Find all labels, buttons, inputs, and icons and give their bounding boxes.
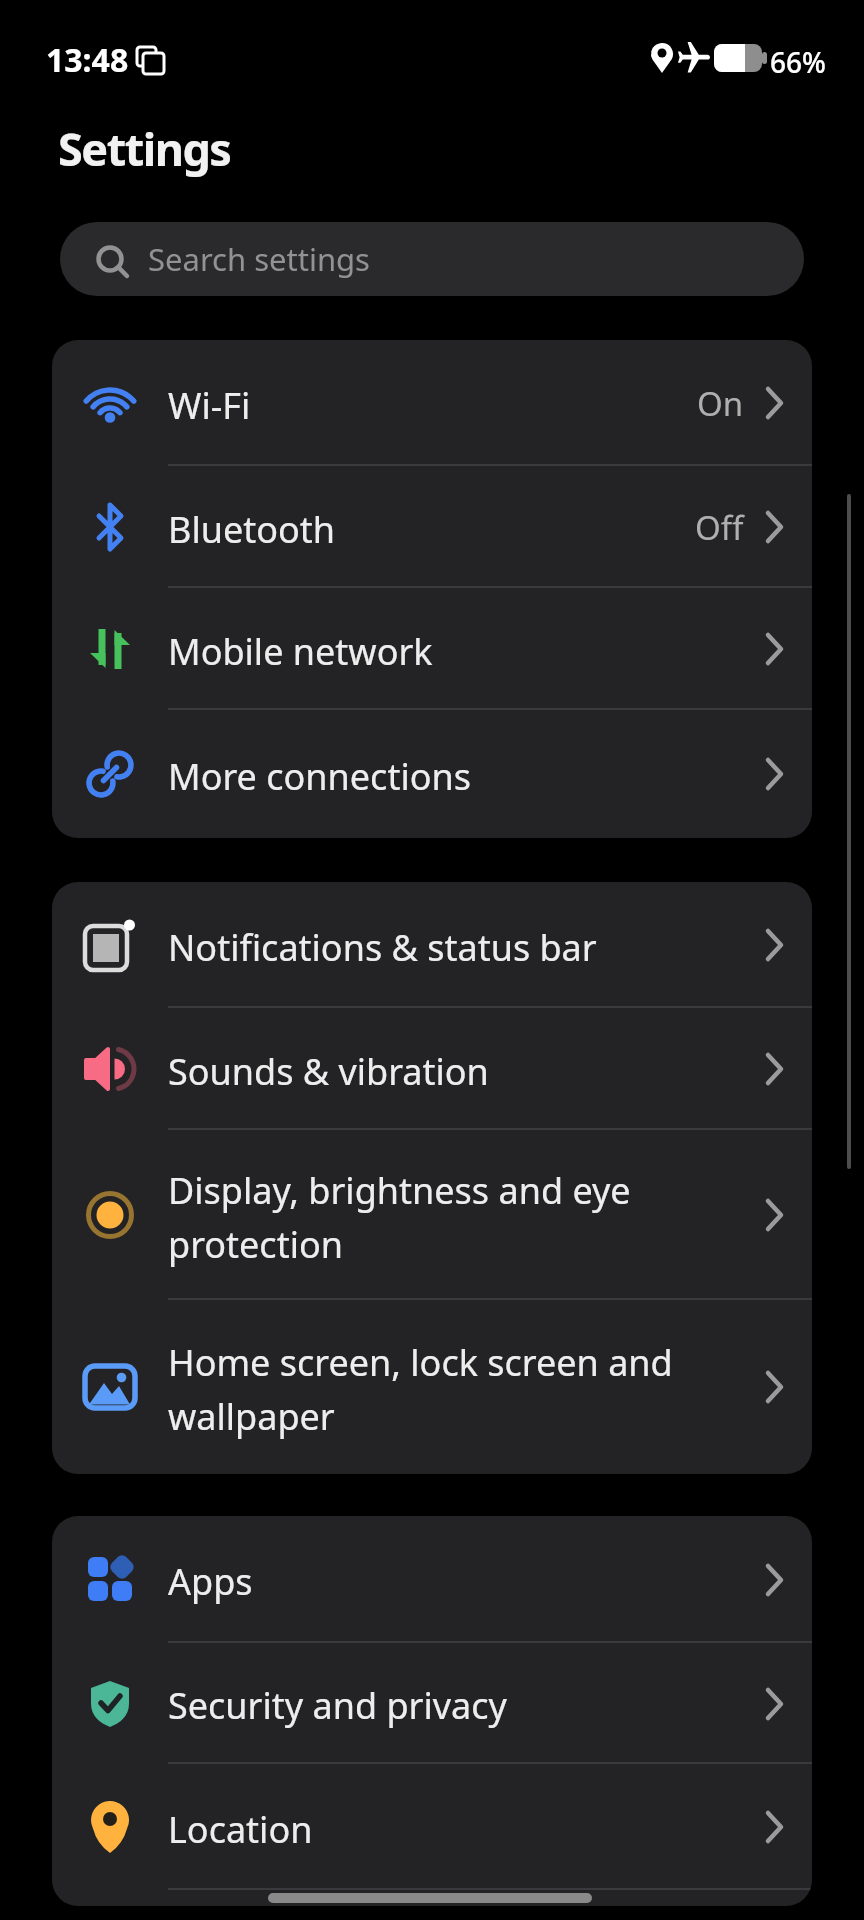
button[interactable]: More connections: [52, 710, 812, 838]
staticText: Home screen, lock screen and wallpaper: [168, 1338, 750, 1441]
staticText: Wi-Fi: [168, 381, 685, 430]
staticText: Security and privacy: [168, 1681, 750, 1730]
staticText: 66%: [770, 43, 826, 81]
staticText: Settings: [58, 118, 231, 179]
button[interactable]: Security and privacy: [52, 1643, 812, 1764]
button[interactable]: Mobile network: [52, 588, 812, 710]
button[interactable]: Display, brightness and eye protection: [52, 1130, 812, 1300]
button[interactable]: Search settings: [60, 222, 804, 296]
staticText: Off: [695, 505, 744, 550]
button[interactable]: Wi-Fi: [52, 340, 812, 466]
button[interactable]: Home screen, lock screen and wallpaper: [52, 1300, 812, 1474]
button[interactable]: Apps: [52, 1516, 812, 1643]
button[interactable]: Location: [52, 1764, 812, 1890]
button[interactable]: Bluetooth: [52, 466, 812, 588]
staticText: Display, brightness and eye protection: [168, 1166, 750, 1269]
staticText: On: [697, 381, 744, 426]
staticText: Sounds & vibration: [168, 1047, 750, 1096]
staticText: Search settings: [148, 238, 370, 280]
staticText: More connections: [168, 752, 750, 801]
staticText: Bluetooth: [168, 505, 683, 554]
staticText: Apps: [168, 1557, 750, 1606]
button[interactable]: Sounds & vibration: [52, 1008, 812, 1130]
staticText: Mobile network: [168, 627, 750, 676]
staticText: Notifications & status bar: [168, 923, 750, 972]
staticText: Location: [168, 1805, 750, 1854]
button[interactable]: Notifications & status bar: [52, 882, 812, 1008]
staticText: 13:48: [46, 38, 129, 82]
